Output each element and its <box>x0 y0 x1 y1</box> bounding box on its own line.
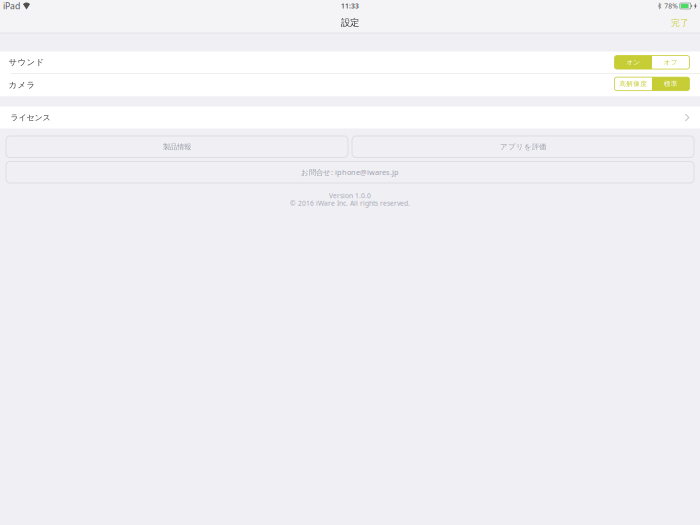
staticText: サウンド <box>8 57 44 68</box>
staticText: オフ <box>664 58 678 66</box>
staticText: 設定 <box>341 17 359 29</box>
button[interactable]: オフ <box>652 55 689 69</box>
staticText: ライセンス <box>10 112 50 123</box>
staticText: 高解像度 <box>619 80 647 88</box>
button[interactable]: 完了 <box>660 13 700 32</box>
button[interactable]: 高解像度 <box>614 77 652 91</box>
staticText: カメラ <box>8 80 35 90</box>
staticText: 11:33 <box>341 1 359 11</box>
staticText: © 2016 iWare Inc. All rights reserved. <box>290 199 410 208</box>
button[interactable]: 標準 <box>652 77 689 91</box>
button[interactable]: お問合せ: iphone@iwares.jp <box>6 161 694 183</box>
staticText: 完了 <box>671 17 689 28</box>
staticText: お問合せ: iphone@iwares.jp <box>301 167 399 177</box>
staticText: iPad <box>3 0 20 12</box>
staticText: 標準 <box>664 80 678 88</box>
staticText: 78% <box>664 1 678 11</box>
button[interactable]: ライセンス <box>0 106 700 128</box>
staticText: Version 1.0.0 <box>329 191 371 200</box>
staticText: 製品情報 <box>163 142 191 151</box>
button[interactable]: 製品情報 <box>6 136 348 157</box>
staticText: アプリを評価 <box>500 142 546 151</box>
staticText: オン <box>626 58 640 66</box>
button[interactable]: オン <box>614 55 652 69</box>
button[interactable]: アプリを評価 <box>352 136 694 157</box>
